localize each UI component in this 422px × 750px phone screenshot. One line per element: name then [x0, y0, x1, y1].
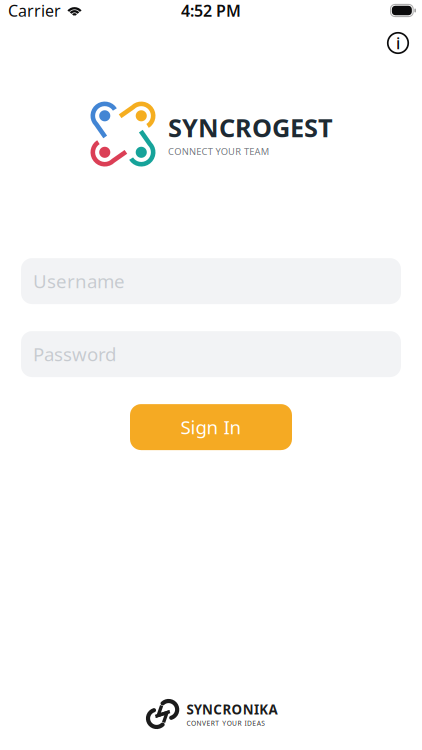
button[interactable]: Sign In — [130, 404, 292, 450]
staticText: Password — [33, 342, 116, 366]
staticText: Sign In — [180, 415, 241, 439]
staticText: Carrier — [8, 0, 61, 21]
staticText: i — [396, 32, 400, 54]
staticText: SYNCRONIKA — [187, 700, 277, 718]
button[interactable]: Info — [380, 27, 416, 59]
staticText: CONVERT YOUR IDEAS — [187, 719, 265, 728]
staticText: SYNCROGEST — [168, 110, 333, 144]
staticText: Username — [33, 269, 125, 293]
staticText: CONNECT YOUR TEAM — [168, 145, 269, 158]
staticText: 4:52 PM — [181, 0, 241, 21]
